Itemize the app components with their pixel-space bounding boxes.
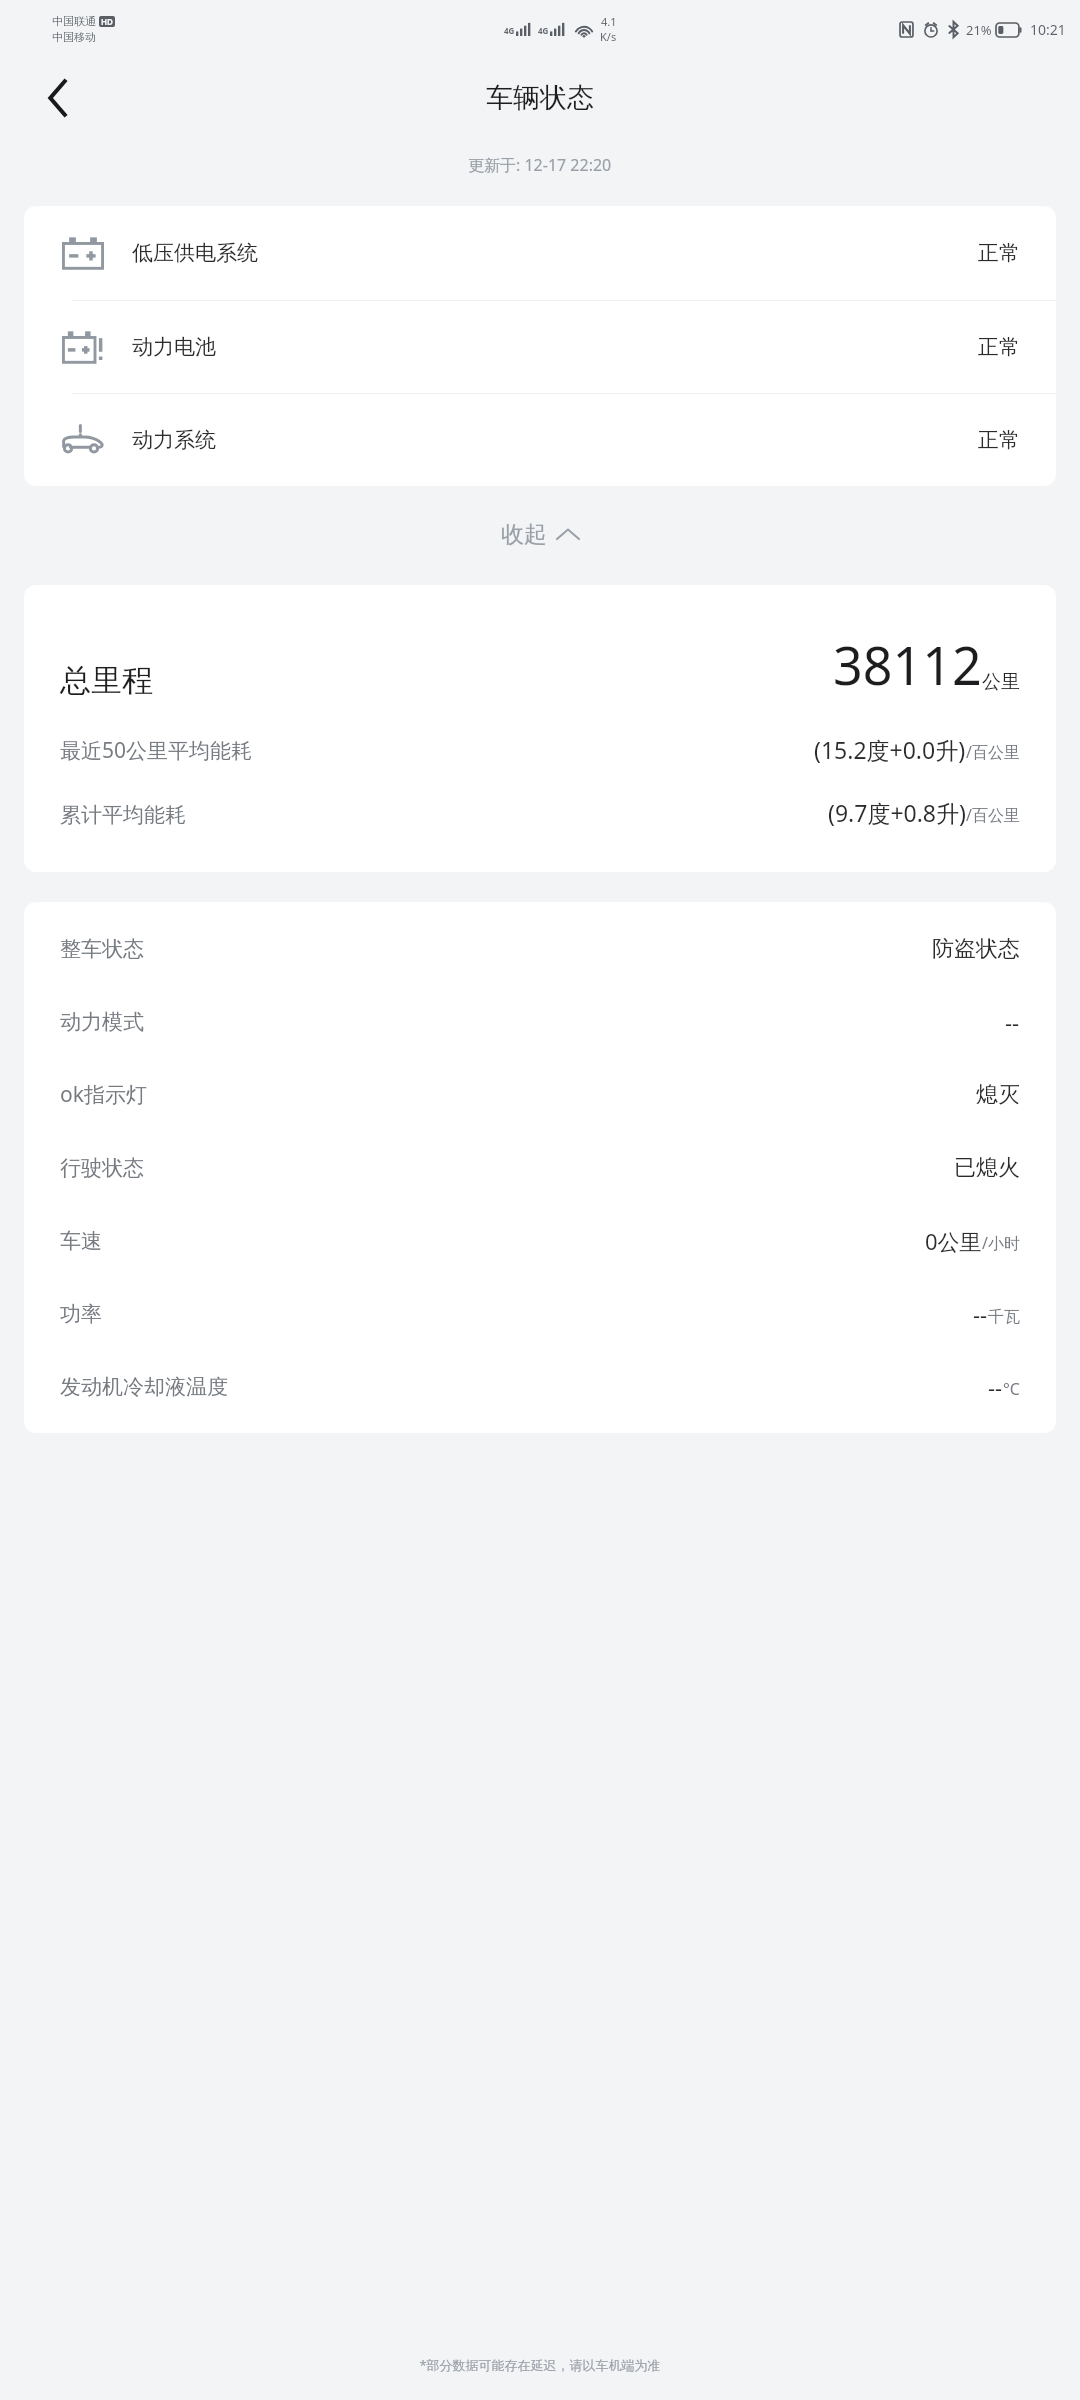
staticText: 总里程 [60, 661, 153, 700]
staticText: 公里 [982, 670, 1020, 694]
staticText: 最近50公里平均能耗 [60, 736, 253, 765]
staticText: 中国联通 [52, 14, 96, 28]
staticText: -- [973, 1299, 988, 1329]
staticText: 累计平均能耗 [60, 802, 186, 828]
staticText: *部分数据可能存在延迟，请以车机端为准 [0, 2356, 1080, 2374]
staticText: 低压供电系统 [132, 240, 258, 266]
staticText: 10:21 [1030, 20, 1066, 39]
staticText: 车辆状态 [486, 81, 594, 115]
button[interactable]: ok指示灯 [60, 1058, 1020, 1131]
staticText: 动力模式 [60, 1009, 144, 1035]
staticText: 动力系统 [132, 427, 216, 453]
staticText: 千瓦 [988, 1307, 1020, 1327]
staticText: /百公里 [966, 804, 1020, 826]
staticText: 21% [966, 21, 992, 39]
button[interactable]: 功率 [60, 1277, 1020, 1350]
button[interactable]: 动力系统 [24, 393, 1056, 486]
staticText: 功率 [60, 1301, 102, 1327]
button[interactable]: 行驶状态 [60, 1131, 1020, 1204]
staticText: 动力电池 [132, 334, 216, 360]
button[interactable]: 动力模式 [60, 985, 1020, 1058]
staticText: (15.2度+0.0升) [814, 734, 966, 765]
staticText: 已熄火 [954, 1154, 1020, 1182]
staticText: (9.7度+0.8升) [828, 797, 966, 828]
staticText: °C [1003, 1378, 1020, 1400]
staticText: 车速 [60, 1228, 102, 1254]
staticText: -- [1005, 1007, 1020, 1037]
staticText: 防盗状态 [932, 935, 1020, 963]
staticText: HD [101, 16, 113, 27]
staticText: 行驶状态 [60, 1155, 144, 1181]
staticText: 正常 [978, 427, 1020, 453]
button[interactable]: 收起 [485, 512, 595, 557]
staticText: 正常 [978, 334, 1020, 360]
button[interactable]: 车速 [60, 1204, 1020, 1277]
staticText: 发动机冷却液温度 [60, 1374, 228, 1400]
staticText: ok指示灯 [60, 1080, 147, 1109]
staticText: 更新于: 12-17 22:20 [468, 154, 612, 176]
staticText: 整车状态 [60, 936, 144, 962]
staticText: 4G [504, 25, 515, 36]
staticText: 正常 [978, 240, 1020, 266]
button[interactable]: 整车状态 [60, 912, 1020, 985]
button[interactable]: Back [30, 70, 86, 126]
button[interactable]: 低压供电系统 [24, 206, 1056, 300]
staticText: 4.1 [601, 14, 617, 29]
staticText: 38112 [833, 629, 982, 700]
staticText: -- [988, 1372, 1003, 1402]
staticText: 中国移动 [52, 30, 96, 44]
staticText: 收起 [501, 520, 547, 549]
staticText: 4G [538, 25, 549, 36]
staticText: 0公里 [925, 1226, 982, 1256]
staticText: /小时 [982, 1232, 1020, 1254]
staticText: /百公里 [966, 741, 1020, 763]
staticText: K/s [600, 29, 617, 44]
staticText: 熄灭 [976, 1081, 1020, 1109]
button[interactable]: 发动机冷却液温度 [60, 1350, 1020, 1423]
button[interactable]: 动力电池 [24, 300, 1056, 393]
